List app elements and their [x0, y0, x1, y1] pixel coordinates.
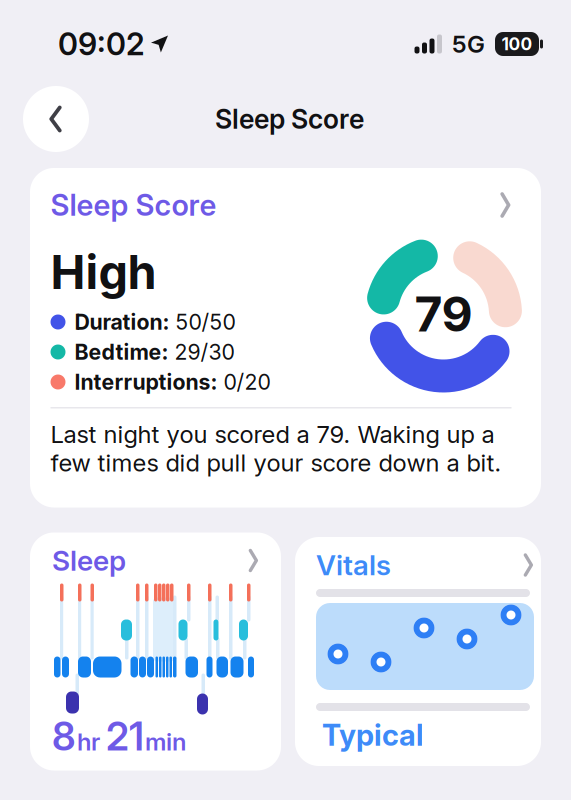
- staticText: Last night you scored a 79. Waking up a …: [50, 420, 501, 477]
- staticText: Sleep Score: [50, 188, 216, 222]
- button[interactable]: Back: [23, 86, 89, 152]
- staticText: Duration: 50/50: [74, 309, 235, 335]
- staticText: hr: [77, 728, 100, 756]
- button[interactable]: Vitals: [295, 537, 541, 766]
- staticText: Typical: [322, 718, 424, 752]
- button[interactable]: Sleep Score: [30, 168, 541, 507]
- staticText: Vitals: [316, 548, 391, 581]
- staticText: min: [145, 728, 186, 756]
- staticText: Interruptions: 0/20: [74, 369, 270, 395]
- staticText: 09:02: [58, 26, 145, 62]
- staticText: 5G: [452, 30, 485, 58]
- staticText: High: [50, 244, 156, 300]
- button[interactable]: Sleep: [30, 532, 281, 770]
- staticText: Bedtime: 29/30: [74, 339, 234, 365]
- staticText: 79: [414, 286, 472, 342]
- staticText: Sleep: [52, 544, 126, 577]
- staticText: Sleep Score: [215, 103, 364, 135]
- staticText: 21: [106, 714, 144, 759]
- staticText: 8: [52, 714, 76, 759]
- staticText: 100: [501, 34, 532, 54]
